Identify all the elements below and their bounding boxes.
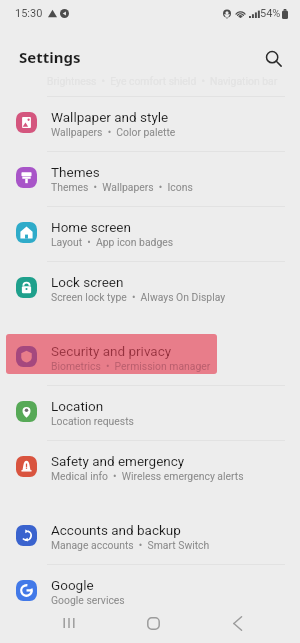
button[interactable]: Home	[129, 603, 177, 643]
staticText: Screen lock type • Always On Display	[51, 291, 226, 303]
button[interactable]: Accounts and backup	[0, 510, 300, 565]
staticText: Google services	[51, 594, 125, 606]
staticText: Brightness • Eye comfort shield • Naviga…	[47, 75, 278, 87]
staticText: Home screen	[51, 219, 131, 235]
button[interactable]: Wallpaper and style	[0, 97, 300, 152]
staticText: Accounts and backup	[51, 522, 181, 538]
staticText: Themes	[51, 164, 100, 180]
button[interactable]: Lock screen	[0, 262, 300, 317]
staticText: Google	[51, 577, 94, 593]
staticText: Location	[51, 398, 104, 414]
staticText: Wallpaper and style	[51, 109, 169, 125]
button[interactable]: Location	[0, 386, 300, 441]
staticText: 54%	[260, 7, 281, 20]
button[interactable]: Recent apps	[45, 603, 93, 643]
button[interactable]: Home screen	[0, 207, 300, 262]
staticText: Biometrics • Permission manager	[51, 360, 211, 372]
button[interactable]: Themes	[0, 152, 300, 207]
staticText: Themes • Wallpapers • Icons	[51, 181, 193, 193]
staticText: Settings	[19, 47, 81, 67]
staticText: 15:30	[15, 7, 43, 20]
staticText: Wallpapers • Color palette	[51, 126, 176, 138]
staticText: Location requests	[51, 415, 134, 427]
staticText: Medical info • Wireless emergency alerts	[51, 470, 244, 482]
button[interactable]: Search	[257, 42, 289, 74]
staticText: Layout • App icon badges	[51, 236, 174, 248]
button[interactable]: Back	[213, 603, 261, 643]
button[interactable]: Google	[0, 565, 300, 620]
staticText: Lock screen	[51, 274, 124, 290]
staticText: Security and privacy	[51, 343, 172, 359]
staticText: Manage accounts • Smart Switch	[51, 539, 210, 551]
button[interactable]: Safety and emergency	[0, 441, 300, 496]
button[interactable]: Security and privacy	[0, 331, 300, 386]
staticText: Safety and emergency	[51, 453, 185, 469]
